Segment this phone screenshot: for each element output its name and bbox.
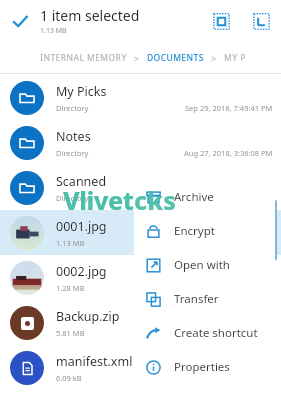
button[interactable]: MY P	[224, 52, 246, 64]
staticText: Sep 29, 2018, 7:49:41 PM	[185, 103, 273, 113]
button[interactable]: Notes	[0, 120, 281, 165]
staticText: 1.28 MB	[56, 283, 85, 293]
staticText: Backup.zip	[56, 308, 120, 325]
staticText: Scanned	[56, 173, 107, 190]
staticText: cks	[134, 183, 176, 217]
staticText: Archive	[174, 189, 214, 205]
staticText: My Picks	[56, 83, 107, 100]
staticText: 6.09 kB	[56, 373, 82, 383]
staticText: Properties	[174, 359, 230, 375]
button[interactable]: manifest.xml	[0, 345, 281, 390]
staticText: DOCUMENTS	[147, 52, 204, 64]
staticText: Create shortcut	[174, 325, 258, 341]
staticText: >	[134, 52, 140, 64]
button[interactable]: Transfer	[134, 282, 275, 316]
staticText: MY P	[224, 52, 246, 64]
button[interactable]: My Picks	[0, 75, 281, 120]
button[interactable]: Archive	[134, 180, 275, 214]
button[interactable]: 0002.jpg	[0, 255, 281, 300]
button[interactable]: Create shortcut	[134, 316, 275, 350]
button[interactable]: Encrypt	[134, 214, 275, 248]
staticText: Directory	[56, 193, 89, 203]
staticText: 0002.jpg	[56, 263, 107, 280]
button[interactable]: DOCUMENTS	[147, 52, 204, 64]
staticText: Transfer	[174, 291, 219, 307]
button[interactable]: INTERNAL MEMORY	[40, 52, 127, 64]
staticText: Notes	[56, 128, 91, 145]
button[interactable]: Select all	[201, 0, 241, 42]
staticText: 1.13 MB	[56, 238, 85, 248]
button[interactable]: 0001.jpg	[0, 210, 281, 255]
button[interactable]: Scanned	[0, 165, 281, 210]
staticText: 5.81 MB	[56, 328, 85, 338]
staticText: manifest.xml	[56, 353, 133, 370]
staticText: VlivetTricks	[63, 183, 205, 217]
button[interactable]: Open with	[134, 248, 275, 282]
staticText: >	[211, 52, 217, 64]
staticText: Encrypt	[174, 223, 215, 239]
staticText: Directory	[56, 103, 89, 113]
staticText: 0001.jpg	[56, 218, 107, 235]
button[interactable]: Backup.zip	[0, 300, 281, 345]
staticText: 1 item selected	[40, 6, 140, 25]
button[interactable]: Deselect all	[0, 0, 40, 42]
staticText: INTERNAL MEMORY	[40, 52, 127, 64]
staticText: Directory	[56, 148, 89, 158]
staticText: Open with	[174, 257, 230, 273]
button[interactable]: Properties	[134, 350, 275, 384]
button[interactable]: Deselect	[241, 0, 281, 42]
staticText: 1.13 MB	[40, 26, 67, 36]
staticText: Aug 27, 2018, 3:36:08 PM	[184, 148, 273, 158]
